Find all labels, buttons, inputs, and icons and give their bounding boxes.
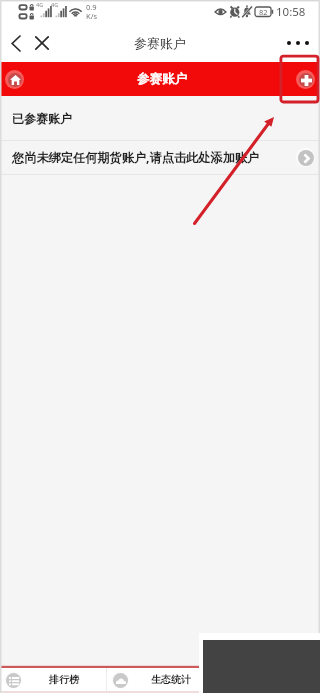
staticText: 4G [36,1,44,8]
button[interactable]: 生态统计 [107,668,213,691]
staticText: 排行榜 [22,673,106,686]
staticText: 参赛账户 [137,71,187,87]
staticText: 10:58 [276,4,306,20]
staticText: 4G [51,1,59,8]
staticText: 参赛账户 [134,35,186,51]
button[interactable]: Home [5,70,24,89]
staticText: 82 [259,7,268,17]
button[interactable]: Add account [296,70,315,89]
button[interactable]: 排行榜 [0,668,106,691]
staticText: 0.9 [86,2,97,12]
button[interactable]: Close [28,29,56,57]
staticText: 您尚未绑定任何期货账户,请点击此处添加账户 [12,149,296,166]
button[interactable]: 您尚未绑定任何期货账户,请点击此处添加账户 [0,141,320,174]
staticText: 生态统计 [129,673,213,686]
button[interactable]: More options [281,26,315,60]
staticText: K/s [86,11,98,21]
button[interactable]: Back [2,29,30,57]
staticText: 已参赛账户 [12,111,72,126]
